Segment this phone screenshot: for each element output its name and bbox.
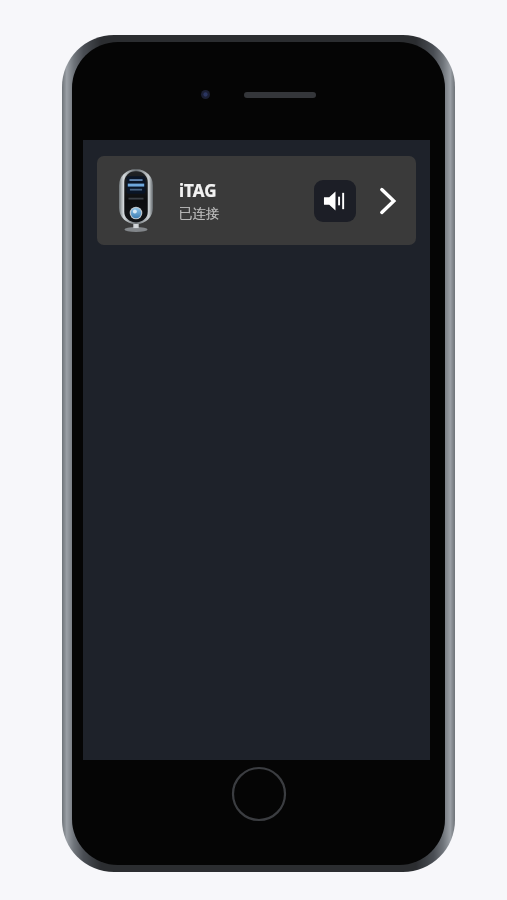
staticText: iTAG [179,179,217,202]
button[interactable]: Ring device [314,180,356,222]
staticText: 已连接 [179,205,220,222]
button[interactable]: Details [372,180,402,222]
button[interactable]: iTAG [97,156,416,245]
